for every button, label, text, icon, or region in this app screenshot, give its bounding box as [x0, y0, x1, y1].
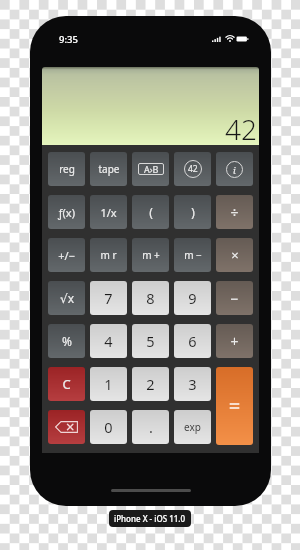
- staticText: 42: [225, 110, 257, 145]
- button[interactable]: tape: [90, 152, 127, 186]
- button[interactable]: Info: [216, 152, 253, 186]
- button[interactable]: ƒ(x): [48, 195, 85, 229]
- staticText: 5: [146, 331, 155, 351]
- button[interactable]: 1/x: [90, 195, 127, 229]
- button[interactable]: +/−: [48, 238, 85, 272]
- staticText: 2: [146, 374, 155, 394]
- staticText: (: [149, 204, 153, 220]
- button[interactable]: Equals: [216, 367, 253, 445]
- staticText: +: [230, 332, 239, 351]
- button[interactable]: 1: [90, 367, 127, 401]
- staticText: tape: [98, 162, 120, 176]
- staticText: %: [62, 333, 72, 349]
- staticText: ƒ(x): [58, 205, 75, 220]
- button[interactable]: +: [216, 324, 253, 358]
- staticText: m −: [184, 248, 202, 262]
- staticText: 3: [188, 374, 197, 394]
- staticText: 4: [104, 331, 113, 351]
- button[interactable]: exp: [174, 410, 211, 444]
- staticText: 42: [188, 163, 198, 175]
- button[interactable]: ): [174, 195, 211, 229]
- staticText: ×: [231, 246, 239, 264]
- staticText: 1/x: [100, 205, 117, 220]
- staticText: C: [62, 375, 71, 393]
- staticText: ): [191, 204, 195, 220]
- staticText: A›B: [144, 163, 159, 175]
- staticText: reg: [59, 162, 75, 176]
- staticText: 1: [104, 374, 113, 394]
- button[interactable]: Constant 42: [174, 152, 211, 186]
- staticText: −: [230, 289, 239, 308]
- button[interactable]: √x: [48, 281, 85, 315]
- button[interactable]: C: [48, 367, 85, 401]
- staticText: √x: [60, 290, 74, 306]
- staticText: iPhone X - iOS 11.0: [114, 513, 186, 524]
- staticText: 7: [104, 288, 113, 308]
- staticText: .: [149, 417, 153, 437]
- staticText: 9:35: [59, 33, 78, 46]
- button[interactable]: 4: [90, 324, 127, 358]
- button[interactable]: 6: [174, 324, 211, 358]
- button[interactable]: m −: [174, 238, 211, 272]
- button[interactable]: .: [132, 410, 169, 444]
- button[interactable]: ÷: [216, 195, 253, 229]
- staticText: 9: [188, 288, 197, 308]
- button[interactable]: m +: [132, 238, 169, 272]
- staticText: 6: [188, 331, 197, 351]
- button[interactable]: A to B conversion: [132, 152, 169, 186]
- staticText: m r: [100, 248, 117, 262]
- staticText: ÷: [230, 203, 239, 222]
- button[interactable]: 2: [132, 367, 169, 401]
- staticText: i: [233, 164, 236, 176]
- staticText: m +: [142, 248, 160, 262]
- button[interactable]: 9: [174, 281, 211, 315]
- button[interactable]: 3: [174, 367, 211, 401]
- button[interactable]: %: [48, 324, 85, 358]
- staticText: exp: [184, 420, 201, 434]
- button[interactable]: 5: [132, 324, 169, 358]
- button[interactable]: −: [216, 281, 253, 315]
- staticText: 0: [104, 417, 113, 437]
- button[interactable]: 7: [90, 281, 127, 315]
- button[interactable]: (: [132, 195, 169, 229]
- button[interactable]: 8: [132, 281, 169, 315]
- button[interactable]: 0: [90, 410, 127, 444]
- staticText: 8: [146, 288, 155, 308]
- button[interactable]: Backspace: [48, 410, 85, 444]
- button[interactable]: m r: [90, 238, 127, 272]
- staticText: +/−: [58, 248, 75, 263]
- button[interactable]: reg: [48, 152, 85, 186]
- button[interactable]: ×: [216, 238, 253, 272]
